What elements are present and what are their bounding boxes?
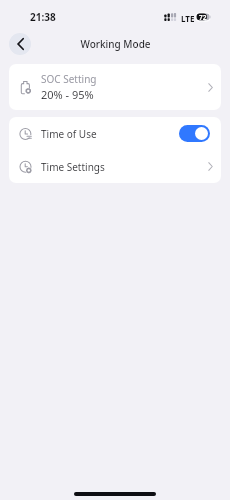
- staticText: Time Settings: [41, 160, 199, 174]
- button[interactable]: Back: [9, 33, 31, 55]
- button[interactable]: Time of Use toggle: [179, 125, 210, 142]
- staticText: Working Mode: [80, 37, 151, 51]
- staticText: 72: [199, 13, 207, 22]
- button[interactable]: SOC Setting: [9, 64, 221, 110]
- staticText: 20% - 95%: [41, 87, 94, 102]
- button[interactable]: Time Settings: [9, 150, 221, 183]
- button[interactable]: Time of Use: [9, 117, 221, 150]
- staticText: 21:38: [30, 10, 56, 24]
- staticText: SOC Setting: [41, 72, 97, 86]
- staticText: Time of Use: [41, 127, 179, 141]
- staticText: LTE: [181, 13, 195, 24]
